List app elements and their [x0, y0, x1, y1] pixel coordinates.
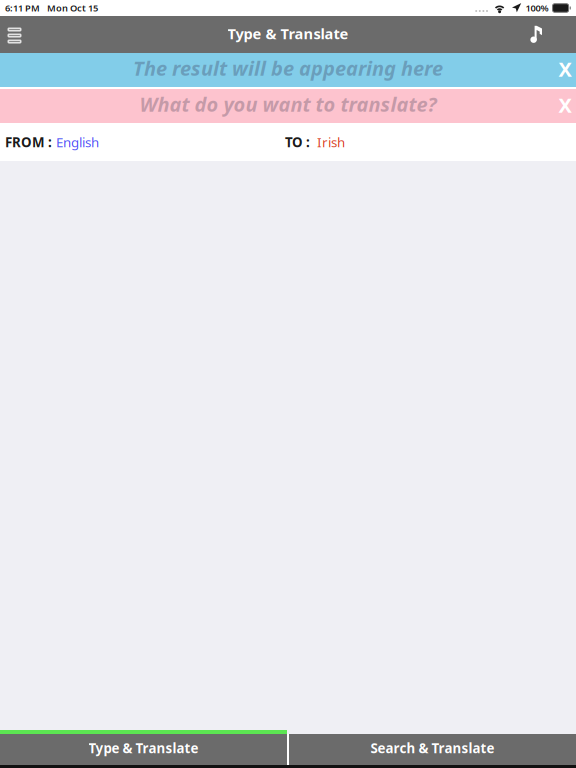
staticText: Mon Oct 15 [47, 2, 98, 14]
staticText: X [558, 56, 571, 82]
staticText: TO : [285, 133, 310, 151]
staticText: The result will be appearing here [133, 55, 443, 81]
staticText: X [558, 92, 571, 118]
staticText: 6:11 PM [5, 2, 40, 14]
staticText: What do you want to translate? [139, 91, 436, 117]
staticText: FROM : [5, 133, 52, 151]
button[interactable]: Clear text [551, 89, 576, 123]
button[interactable]: Search & Translate [289, 734, 576, 762]
staticText: Type & Translate [88, 739, 198, 757]
staticText: Type & Translate [227, 24, 348, 43]
staticText: Search & Translate [370, 739, 494, 757]
button[interactable]: Type & Translate [0, 734, 287, 762]
staticText: English [56, 133, 99, 151]
button[interactable]: Music [518, 16, 554, 53]
staticText: 100% [526, 2, 549, 14]
button[interactable]: FROM : [0, 123, 105, 161]
button[interactable]: TO : [285, 123, 351, 161]
staticText: Irish [317, 133, 345, 151]
button[interactable]: Clear text [551, 53, 576, 87]
button[interactable]: Menu [0, 16, 29, 53]
